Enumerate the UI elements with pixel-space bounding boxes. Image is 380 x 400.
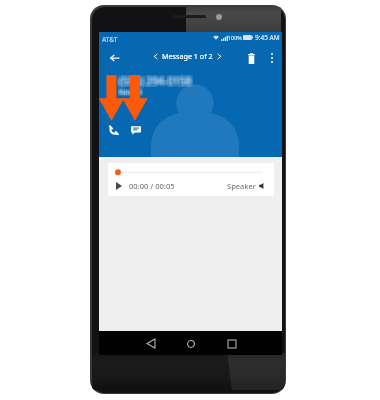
button[interactable]: More options — [265, 51, 278, 64]
staticText: Nov 30 — [120, 88, 143, 98]
staticText: (555) 294-0158 — [120, 74, 193, 88]
staticText: Nov 30 — [120, 89, 143, 99]
staticText: Nov 30 — [120, 88, 143, 98]
staticText: Nov 30 — [119, 88, 142, 98]
staticText: (555) 294-0158 — [117, 72, 190, 86]
staticText: (555) 294-0158 — [120, 76, 193, 90]
staticText: (555) 294-0158 — [121, 74, 194, 88]
staticText: (555) 294-0158 — [121, 75, 194, 89]
staticText: Nov 30 — [118, 88, 141, 98]
staticText: (555) 294-0158 — [118, 72, 191, 86]
staticText: Nov 30 — [120, 86, 143, 96]
staticText: Nov 30 — [119, 89, 142, 99]
staticText: Nov 30 — [120, 88, 143, 98]
staticText: (555) 294-0158 — [121, 72, 194, 86]
staticText: (555) 294-0158 — [120, 75, 193, 89]
staticText: Nov 30 — [118, 89, 141, 99]
staticText: AT&T — [102, 35, 118, 44]
staticText: (555) 294-0158 — [120, 72, 193, 86]
staticText: (555) 294-0158 — [117, 76, 190, 90]
staticText: Message 1 of 2 — [162, 51, 213, 61]
staticText: (555) 294-0158 — [117, 75, 190, 89]
button[interactable]: Home — [182, 335, 199, 352]
staticText: Nov 30 — [120, 87, 143, 97]
staticText: (555) 294-0158 — [118, 74, 191, 88]
button[interactable]: Call — [104, 120, 123, 139]
staticText: Nov 30 — [118, 88, 141, 98]
staticText: Nov 30 — [118, 87, 141, 97]
button[interactable]: Message 1 of 2 — [153, 48, 222, 64]
staticText: (555) 294-0158 — [118, 76, 191, 90]
staticText: Nov 30 — [118, 87, 141, 97]
staticText: Nov 30 — [118, 88, 141, 98]
staticText: Nov 30 — [120, 89, 143, 99]
staticText: (555) 294-0158 — [121, 76, 194, 90]
staticText: Nov 30 — [119, 88, 142, 98]
staticText: Nov 30 — [119, 87, 142, 97]
staticText: (555) 294-0158 — [120, 73, 193, 87]
staticText: (555) 294-0158 — [117, 73, 190, 87]
staticText: (555) 294-0158 — [119, 73, 192, 87]
staticText: (555) 294-0158 — [118, 75, 191, 89]
button[interactable]: Recents — [223, 335, 240, 352]
staticText: Nov 30 — [119, 86, 142, 96]
staticText: (555) 294-0158 — [119, 74, 192, 88]
staticText: Nov 30 — [118, 86, 141, 96]
staticText: (555) 294-0158 — [119, 76, 192, 90]
button[interactable]: Message — [126, 120, 145, 139]
staticText: (555) 294-0158 — [119, 72, 192, 86]
staticText: Speaker — [227, 181, 256, 191]
staticText: 00:00 / 00:05 — [129, 181, 175, 191]
staticText: Nov 30 — [118, 86, 141, 96]
staticText: Nov 30 — [118, 89, 141, 99]
staticText: (555) 294-0158 — [118, 73, 191, 87]
button[interactable]: Delete — [243, 50, 260, 67]
staticText: Nov 30 — [120, 88, 143, 98]
staticText: 9:45 AM — [255, 33, 280, 42]
staticText: Nov 30 — [120, 86, 143, 96]
staticText: (555) 294-0158 — [117, 74, 190, 88]
button[interactable]: Back — [142, 335, 159, 352]
staticText: 100% — [228, 34, 242, 41]
staticText: (555) 294-0158 — [121, 73, 194, 87]
staticText: (555) 294-0158 — [119, 75, 192, 89]
staticText: Nov 30 — [120, 87, 143, 97]
button[interactable]: 00:00 / 00:05 — [108, 163, 274, 196]
button[interactable]: Back — [106, 49, 123, 66]
staticText: Nov 30 — [118, 88, 141, 98]
